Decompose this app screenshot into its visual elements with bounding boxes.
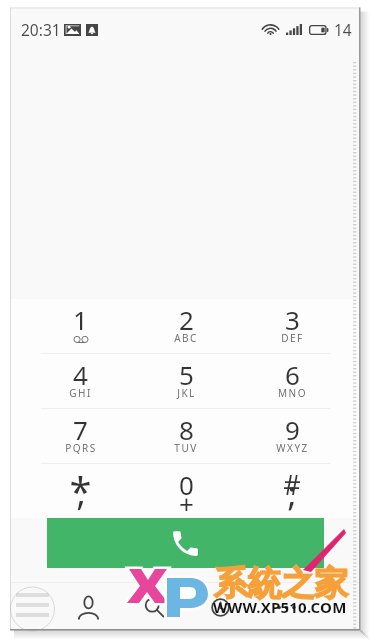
staticText: 20:31 — [21, 19, 61, 40]
staticText: 3 — [285, 302, 300, 337]
staticText: , — [76, 467, 86, 516]
button[interactable]: * — [28, 464, 133, 518]
button[interactable]: 1 — [28, 299, 133, 353]
button[interactable]: 5 — [133, 354, 239, 408]
staticText: 14 — [334, 19, 352, 40]
staticText: MNO — [278, 386, 307, 400]
staticText: 1 — [73, 302, 88, 337]
staticText: 系統之家 — [214, 562, 348, 605]
button[interactable]: 6 — [239, 354, 345, 408]
button[interactable]: 2 — [133, 299, 239, 353]
button[interactable]: # — [239, 464, 345, 518]
staticText: 4 — [73, 357, 88, 392]
staticText: 8 — [179, 412, 194, 447]
staticText: GHI — [69, 386, 92, 400]
button[interactable]: Contacts — [55, 583, 121, 631]
button[interactable]: Search — [121, 583, 187, 631]
button[interactable]: 8 — [133, 409, 239, 463]
staticText: JKL — [177, 386, 196, 400]
staticText: WXYZ — [276, 441, 309, 455]
staticText: 9 — [285, 412, 300, 447]
staticText: * — [69, 463, 92, 517]
staticText: ABC — [174, 331, 198, 345]
button[interactable]: Call — [47, 518, 324, 568]
staticText: 5 — [179, 357, 194, 392]
staticText: WWW.XP510.COM — [213, 597, 347, 617]
staticText: 7 — [73, 412, 88, 447]
button[interactable]: 4 — [28, 354, 133, 408]
staticText: TUV — [174, 441, 198, 455]
staticText: 2 — [179, 302, 194, 337]
staticText: + — [179, 486, 194, 521]
staticText: PQRS — [65, 441, 97, 455]
staticText: DEF — [281, 331, 304, 345]
button[interactable]: More options — [253, 583, 319, 631]
button[interactable]: 7 — [28, 409, 133, 463]
button[interactable]: Favourites — [187, 583, 253, 631]
button[interactable]: 3 — [239, 299, 345, 353]
button[interactable]: 0 — [133, 464, 239, 518]
staticText: 0 — [179, 467, 194, 502]
staticText: ; — [287, 470, 297, 516]
staticText: # — [283, 466, 301, 503]
staticText: 6 — [285, 357, 300, 392]
button[interactable]: 9 — [239, 409, 345, 463]
